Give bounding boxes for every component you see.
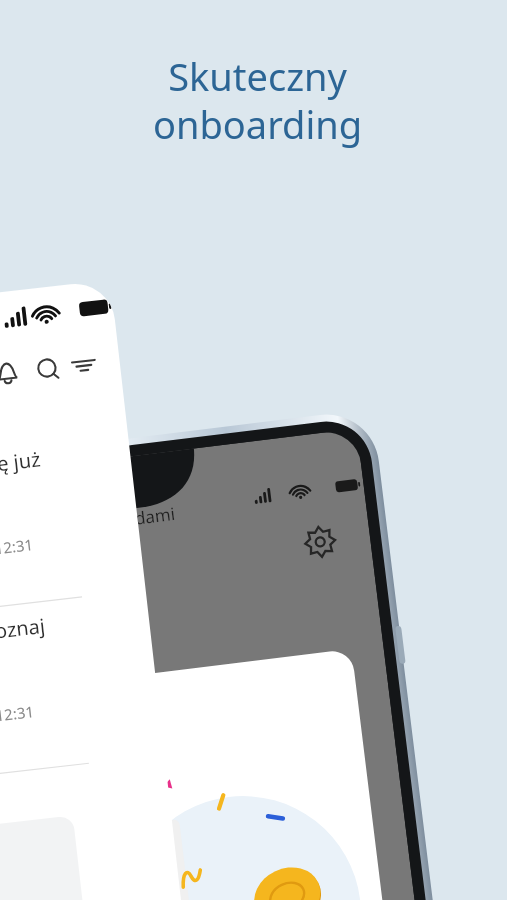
button[interactable]	[0, 0, 507, 900]
other: Skuteczny onboarding	[0, 0, 507, 900]
